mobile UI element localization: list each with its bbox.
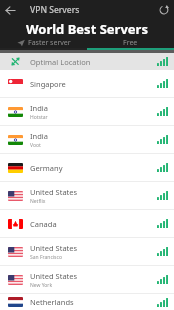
button[interactable]: Optimal Location bbox=[0, 53, 174, 70]
button[interactable]: United States bbox=[0, 266, 174, 294]
staticText: India bbox=[30, 103, 48, 113]
button[interactable]: United States bbox=[0, 182, 174, 210]
staticText: World Best Servers bbox=[26, 20, 148, 37]
staticText: VPN Servers bbox=[30, 4, 80, 16]
button[interactable]: Refresh bbox=[154, 0, 174, 20]
staticText: Canada bbox=[30, 219, 57, 229]
button[interactable]: Germany bbox=[0, 154, 174, 182]
button[interactable]: Netherlands bbox=[0, 294, 174, 310]
button[interactable]: Canada bbox=[0, 210, 174, 238]
staticText: Faster server bbox=[28, 38, 71, 48]
button[interactable]: Faster server bbox=[0, 37, 87, 48]
staticText: United States bbox=[30, 243, 78, 253]
staticText: Netherlands bbox=[30, 297, 74, 307]
staticText: United States bbox=[30, 271, 78, 281]
staticText: Free bbox=[123, 38, 138, 48]
staticText: Voot bbox=[30, 142, 41, 149]
staticText: Singapore bbox=[30, 79, 66, 89]
button[interactable]: India bbox=[0, 98, 174, 126]
staticText: New York bbox=[30, 282, 53, 289]
button[interactable]: Back bbox=[0, 0, 20, 20]
button[interactable]: United States bbox=[0, 238, 174, 266]
staticText: India bbox=[30, 131, 48, 141]
staticText: United States bbox=[30, 187, 78, 197]
button[interactable]: Singapore bbox=[0, 70, 174, 98]
staticText: Germany bbox=[30, 163, 63, 173]
staticText: Hotstar bbox=[30, 114, 48, 121]
button[interactable]: India bbox=[0, 126, 174, 154]
staticText: Optimal Location bbox=[30, 57, 91, 67]
staticText: Netflix bbox=[30, 198, 46, 205]
button[interactable]: Free bbox=[87, 37, 174, 48]
staticText: San Francisco bbox=[30, 254, 62, 261]
